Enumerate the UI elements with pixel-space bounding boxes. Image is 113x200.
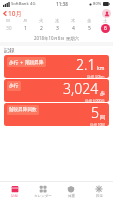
staticText: 10月 xyxy=(8,9,22,17)
staticText: 5 xyxy=(91,103,99,122)
button[interactable]: 4 xyxy=(65,23,81,33)
button[interactable]: 階段昇降回数 xyxy=(4,103,109,126)
staticText: km xyxy=(97,65,105,72)
staticText: 3,024 xyxy=(63,79,99,98)
staticText: SoftBank xyxy=(11,1,29,7)
staticText: 水 xyxy=(55,18,60,23)
button[interactable]: 設定 xyxy=(85,182,113,200)
staticText: 火 xyxy=(39,18,44,23)
staticText: 30 xyxy=(6,25,12,32)
staticText: 3 xyxy=(56,25,59,32)
staticText: 4 xyxy=(72,25,75,32)
button[interactable]: 3 xyxy=(49,23,65,33)
staticText: 記録 xyxy=(4,47,15,54)
staticText: 80% xyxy=(93,1,102,7)
staticText: 2 xyxy=(40,25,43,32)
button[interactable]: 2 xyxy=(33,23,49,33)
button[interactable]: 5 xyxy=(81,23,97,33)
staticText: 階段昇降回数 xyxy=(9,107,37,113)
staticText: 回 xyxy=(100,114,105,120)
staticText: 木 xyxy=(71,18,76,23)
button[interactable]: 歩行 xyxy=(4,79,109,102)
button[interactable]: Profile xyxy=(102,9,111,18)
button[interactable]: 10月 xyxy=(2,8,23,18)
button[interactable]: 歩行 ＋ 階段昇降 xyxy=(4,55,109,78)
staticText: 日 xyxy=(6,18,11,23)
staticText: 月 xyxy=(23,18,28,23)
staticText: 2018年10月6日 星期六 xyxy=(34,35,80,41)
staticText: 歩行 xyxy=(9,83,19,89)
button[interactable]: カレンダー xyxy=(29,182,57,200)
staticText: 11:38 xyxy=(56,1,68,7)
button[interactable]: 1 xyxy=(17,23,33,33)
staticText: 体重 xyxy=(68,194,75,198)
staticText: 目標 10回 xyxy=(90,122,105,126)
staticText: カレンダー xyxy=(34,194,52,198)
staticText: 記録 xyxy=(11,194,18,198)
staticText: 5 xyxy=(88,25,91,32)
button[interactable]: 体重 xyxy=(57,182,85,200)
staticText: 目標 6,000歩 xyxy=(85,98,105,102)
staticText: 歩行 ＋ 階段昇降 xyxy=(9,59,44,65)
button[interactable]: 6 xyxy=(97,23,113,33)
staticText: 6 xyxy=(104,25,107,32)
button[interactable]: 30 xyxy=(0,23,17,33)
staticText: 目標 3.0km xyxy=(87,74,105,78)
staticText: 1 xyxy=(24,25,27,32)
staticText: 4G xyxy=(30,1,36,7)
staticText: 金 xyxy=(87,18,92,23)
button[interactable]: 記録 xyxy=(0,182,29,200)
staticText: 2.1 xyxy=(76,55,96,74)
staticText: 土 xyxy=(103,18,108,23)
staticText: 設定 xyxy=(96,194,103,198)
staticText: 歩 xyxy=(100,90,105,96)
